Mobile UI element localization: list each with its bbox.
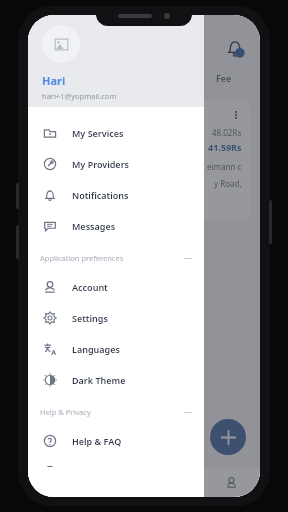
staticText: Languages — [72, 343, 120, 355]
staticText: Messages — [72, 220, 116, 232]
staticText: eimann c — [207, 161, 242, 172]
staticText: 48.02Rs — [212, 127, 242, 138]
button[interactable]: Languages — [28, 333, 204, 364]
button[interactable]: My Providers — [28, 148, 204, 179]
staticText: hari+1@yopmail.com — [42, 91, 117, 101]
button[interactable]: Add — [210, 419, 246, 455]
staticText: Settings — [72, 312, 108, 324]
button[interactable]: Hari — [28, 15, 204, 107]
button[interactable]: Messages — [28, 210, 204, 241]
button[interactable]: My Services — [28, 117, 204, 148]
staticText: Notifications — [72, 189, 129, 201]
button[interactable]: Account — [28, 271, 204, 302]
button[interactable]: Notifications — [28, 179, 204, 210]
staticText: Hari — [42, 73, 66, 88]
button[interactable]: Notifications — [222, 35, 248, 61]
button[interactable]: Help & FAQ — [28, 425, 204, 456]
button[interactable] — [28, 456, 204, 487]
staticText: Fee — [216, 72, 232, 84]
staticText: 41.59Rs — [208, 141, 242, 153]
staticText: My Providers — [72, 158, 129, 170]
staticText: y Road, — [214, 178, 242, 189]
button[interactable]: Settings — [28, 302, 204, 333]
staticText: My Services — [72, 127, 124, 139]
button[interactable]: Dark Theme — [28, 364, 204, 395]
button[interactable]: 48.02Rs — [38, 101, 250, 221]
staticText: Account — [72, 281, 108, 293]
staticText: Application preferences — [40, 253, 124, 263]
staticText: Help & FAQ — [72, 435, 122, 447]
button[interactable]: Tab 4 — [218, 469, 244, 495]
staticText: Help & Privacy — [40, 407, 91, 417]
staticText: Dark Theme — [72, 374, 126, 386]
